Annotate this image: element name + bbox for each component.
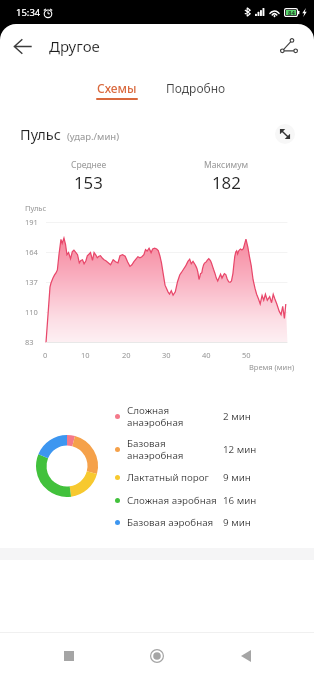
staticText: 20 xyxy=(122,350,131,360)
button[interactable]: Базовая анаэробная xyxy=(115,433,314,466)
staticText: Лактатный порог xyxy=(127,471,223,484)
staticText: Пульс xyxy=(20,124,61,144)
staticText: Схемы xyxy=(97,80,137,96)
button[interactable]: Подробно xyxy=(160,80,232,96)
staticText: 50 xyxy=(242,350,251,360)
button[interactable]: Сложная аэробная xyxy=(115,489,314,511)
button[interactable]: Back xyxy=(226,636,266,676)
staticText: 15:34 xyxy=(16,6,41,19)
staticText: 16 мин xyxy=(223,494,257,507)
staticText: Другое xyxy=(49,36,100,56)
staticText: Среднее xyxy=(71,159,107,171)
staticText: Подробно xyxy=(166,80,226,96)
button[interactable]: Сложная анаэробная xyxy=(115,399,314,433)
staticText: (удар./мин) xyxy=(67,130,119,143)
staticText: Базовая аэробная xyxy=(127,516,223,529)
button[interactable]: Share xyxy=(272,29,306,63)
staticText: 40 xyxy=(202,350,211,360)
staticText: 137 xyxy=(25,277,38,287)
staticText: 10 xyxy=(81,350,90,360)
button[interactable]: Recent apps xyxy=(49,636,89,676)
staticText: Максимум xyxy=(204,159,249,171)
staticText: 83 xyxy=(25,337,34,347)
button[interactable]: Home xyxy=(137,636,177,676)
staticText: 182 xyxy=(212,171,241,194)
button[interactable]: Базовая аэробная xyxy=(115,511,314,533)
staticText: Базовая анаэробная xyxy=(127,437,223,462)
staticText: 164 xyxy=(25,247,38,257)
button[interactable]: Expand chart xyxy=(275,124,295,144)
staticText: 110 xyxy=(25,307,38,317)
staticText: Сложная аэробная xyxy=(127,494,223,507)
staticText: Сложная анаэробная xyxy=(127,404,223,429)
staticText: Время (мин) xyxy=(249,362,295,372)
staticText: 9 мин xyxy=(223,516,251,529)
button[interactable]: Back xyxy=(0,24,44,68)
staticText: 12 мин xyxy=(223,443,257,456)
staticText: 0 xyxy=(43,350,48,360)
staticText: 30 xyxy=(162,350,171,360)
staticText: 84 xyxy=(288,9,295,17)
staticText: 153 xyxy=(74,171,103,194)
button[interactable]: Схемы xyxy=(90,80,144,100)
staticText: 2 мин xyxy=(223,410,251,423)
staticText: 191 xyxy=(25,217,38,227)
button[interactable]: Лактатный порог xyxy=(115,466,314,489)
staticText: Пульс xyxy=(25,203,47,213)
staticText: 9 мин xyxy=(223,471,251,484)
